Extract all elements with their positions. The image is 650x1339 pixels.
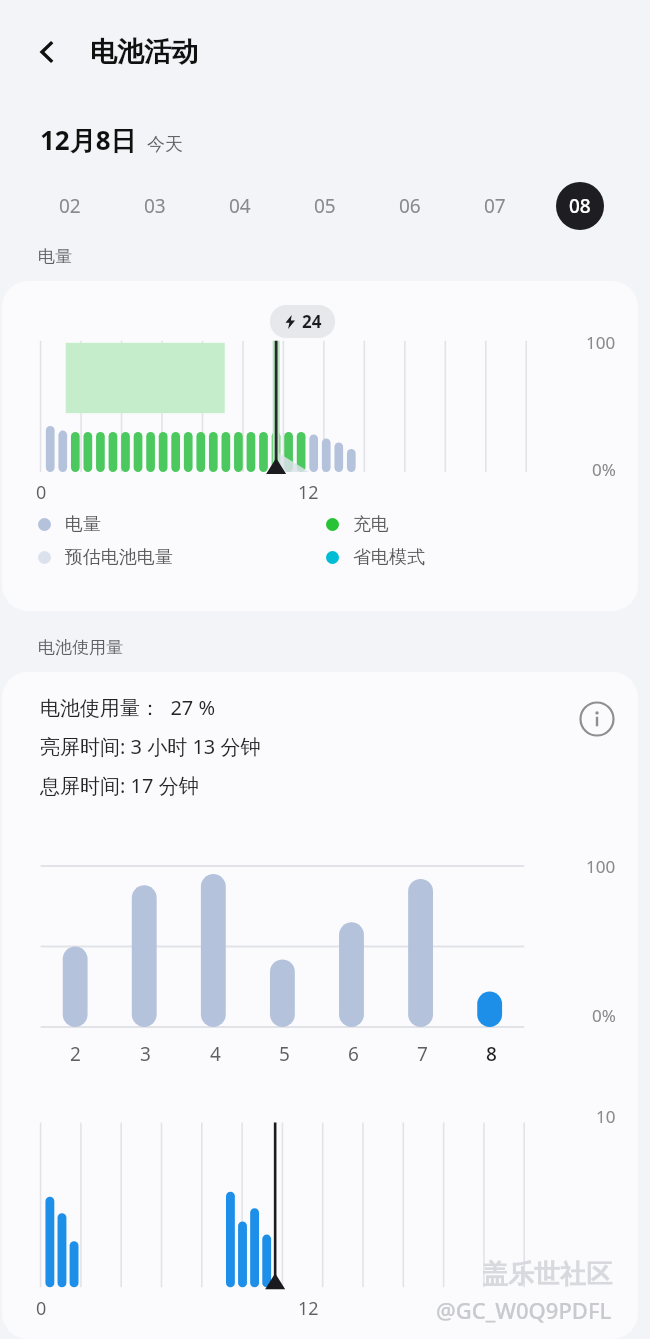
staticText: 100 xyxy=(586,855,616,878)
staticText: 电池使用量 xyxy=(38,637,123,658)
staticText: 电池使用量： 27 % xyxy=(40,694,216,721)
staticText: 03 xyxy=(144,193,166,219)
staticText: 省电模式 xyxy=(353,546,425,569)
button[interactable]: 06 xyxy=(367,178,452,234)
staticText: 10 xyxy=(596,1105,616,1128)
staticText: 12 xyxy=(298,1296,319,1321)
staticText: 08 xyxy=(569,193,591,219)
staticText: 100 xyxy=(586,331,616,354)
staticText: 4 xyxy=(210,1041,221,1067)
button[interactable]: 08 xyxy=(537,178,622,234)
staticText: 息屏时间: 17 分钟 xyxy=(40,772,199,799)
staticText: 电池活动 xyxy=(90,35,198,69)
staticText: 8 xyxy=(486,1041,497,1067)
staticText: 07 xyxy=(484,193,506,219)
staticText: 0 xyxy=(36,1296,47,1321)
staticText: 今天 xyxy=(147,133,183,156)
button[interactable]: Back xyxy=(22,26,74,78)
staticText: 24 xyxy=(302,310,322,333)
button[interactable]: 电池使用量： 27 % xyxy=(2,672,638,1339)
staticText: 04 xyxy=(229,193,251,219)
staticText: 电量 xyxy=(65,513,101,536)
staticText: 12 xyxy=(298,480,319,505)
button[interactable]: 24 xyxy=(2,281,638,611)
staticText: 2 xyxy=(70,1041,81,1067)
button[interactable]: 07 xyxy=(452,178,537,234)
staticText: 02 xyxy=(59,193,81,219)
staticText: 亮屏时间: 3 小时 13 分钟 xyxy=(40,733,261,760)
staticText: 0% xyxy=(592,458,616,481)
staticText: 06 xyxy=(399,193,421,219)
button[interactable]: 03 xyxy=(112,178,197,234)
button[interactable]: Info xyxy=(574,696,620,742)
staticText: 充电 xyxy=(353,513,389,536)
staticText: 5 xyxy=(279,1041,290,1067)
button[interactable]: 05 xyxy=(282,178,367,234)
button[interactable]: 02 xyxy=(28,178,112,234)
staticText: 12月8日 xyxy=(40,122,137,158)
staticText: 盖乐世社区 xyxy=(482,1258,612,1291)
staticText: 电量 xyxy=(38,246,72,267)
staticText: 0 xyxy=(36,480,47,505)
staticText: 05 xyxy=(314,193,336,219)
staticText: 6 xyxy=(348,1041,359,1067)
staticText: 预估电池电量 xyxy=(65,546,173,569)
staticText: 3 xyxy=(140,1041,151,1067)
staticText: 7 xyxy=(417,1041,428,1067)
button[interactable]: 04 xyxy=(197,178,282,234)
staticText: @GC_W0Q9PDFL xyxy=(436,1295,612,1325)
staticText: 0% xyxy=(592,1004,616,1027)
